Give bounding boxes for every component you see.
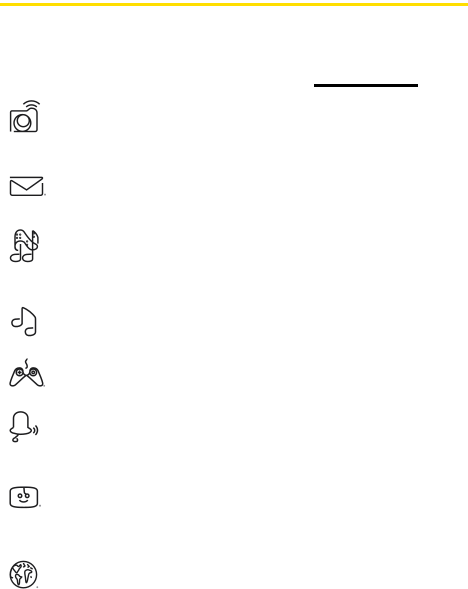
button[interactable]: Music [0,0,468,589]
button[interactable]: Notifications [0,0,468,589]
button[interactable]: Language [0,0,468,589]
button[interactable]: Mail [0,0,468,589]
button[interactable]: Sounds [0,0,468,589]
button[interactable]: Camera [0,0,468,589]
button[interactable]: Games [0,0,468,589]
button[interactable]: Emoji [0,0,468,589]
